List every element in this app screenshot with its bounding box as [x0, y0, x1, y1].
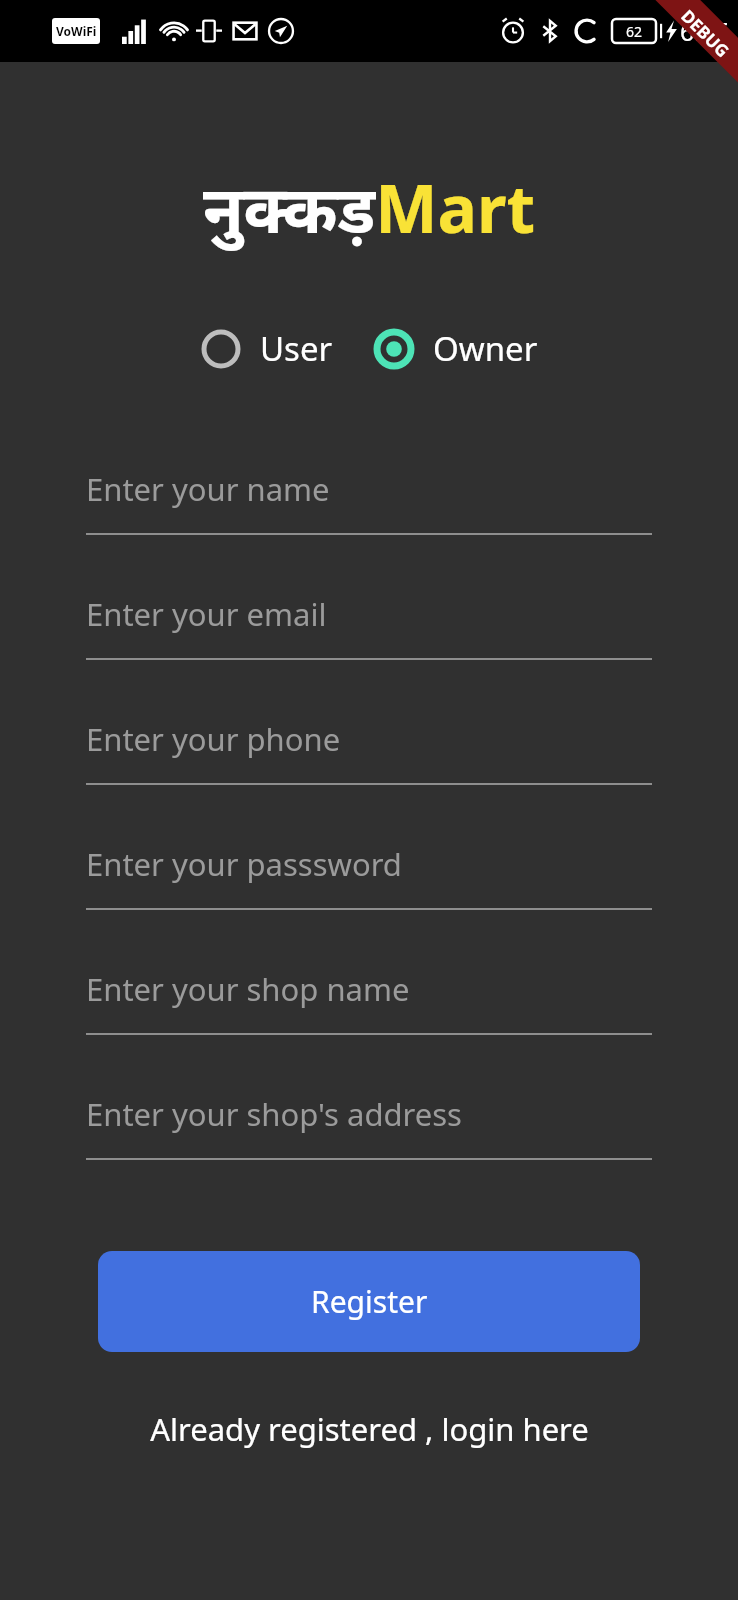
button[interactable]: Enter your passsword — [86, 820, 652, 945]
staticText: 62 — [626, 22, 643, 41]
staticText: नुक्कड़Mart — [203, 162, 536, 252]
button[interactable]: Already registered , login here — [0, 1408, 738, 1450]
button[interactable]: Enter your shop name — [86, 945, 652, 1070]
staticText: DEBUG — [676, 4, 734, 62]
button[interactable]: Enter your shop's address — [86, 1070, 652, 1195]
button[interactable]: Register — [98, 1251, 640, 1352]
staticText: Already registered , login here — [150, 1408, 589, 1450]
staticText: Enter your shop name — [86, 968, 410, 1010]
staticText: Register — [311, 1281, 428, 1322]
button[interactable]: Enter your phone — [86, 695, 652, 820]
staticText: Enter your email — [86, 593, 327, 635]
button[interactable]: Enter your name — [86, 445, 652, 570]
button[interactable]: User not selected — [200, 326, 333, 371]
staticText: Enter your shop's address — [86, 1093, 462, 1135]
other: Owner selected — [373, 328, 415, 370]
other: User not selected — [200, 328, 242, 370]
button[interactable]: Owner selected — [373, 326, 538, 371]
button[interactable]: Enter your email — [86, 570, 652, 695]
staticText: Enter your passsword — [86, 843, 402, 885]
staticText: User — [260, 326, 333, 371]
staticText: Owner — [433, 326, 538, 371]
staticText: Enter your name — [86, 468, 330, 510]
staticText: Enter your phone — [86, 718, 341, 760]
staticText: 6:05 — [680, 14, 730, 48]
staticText: VoWiFi — [56, 23, 97, 39]
